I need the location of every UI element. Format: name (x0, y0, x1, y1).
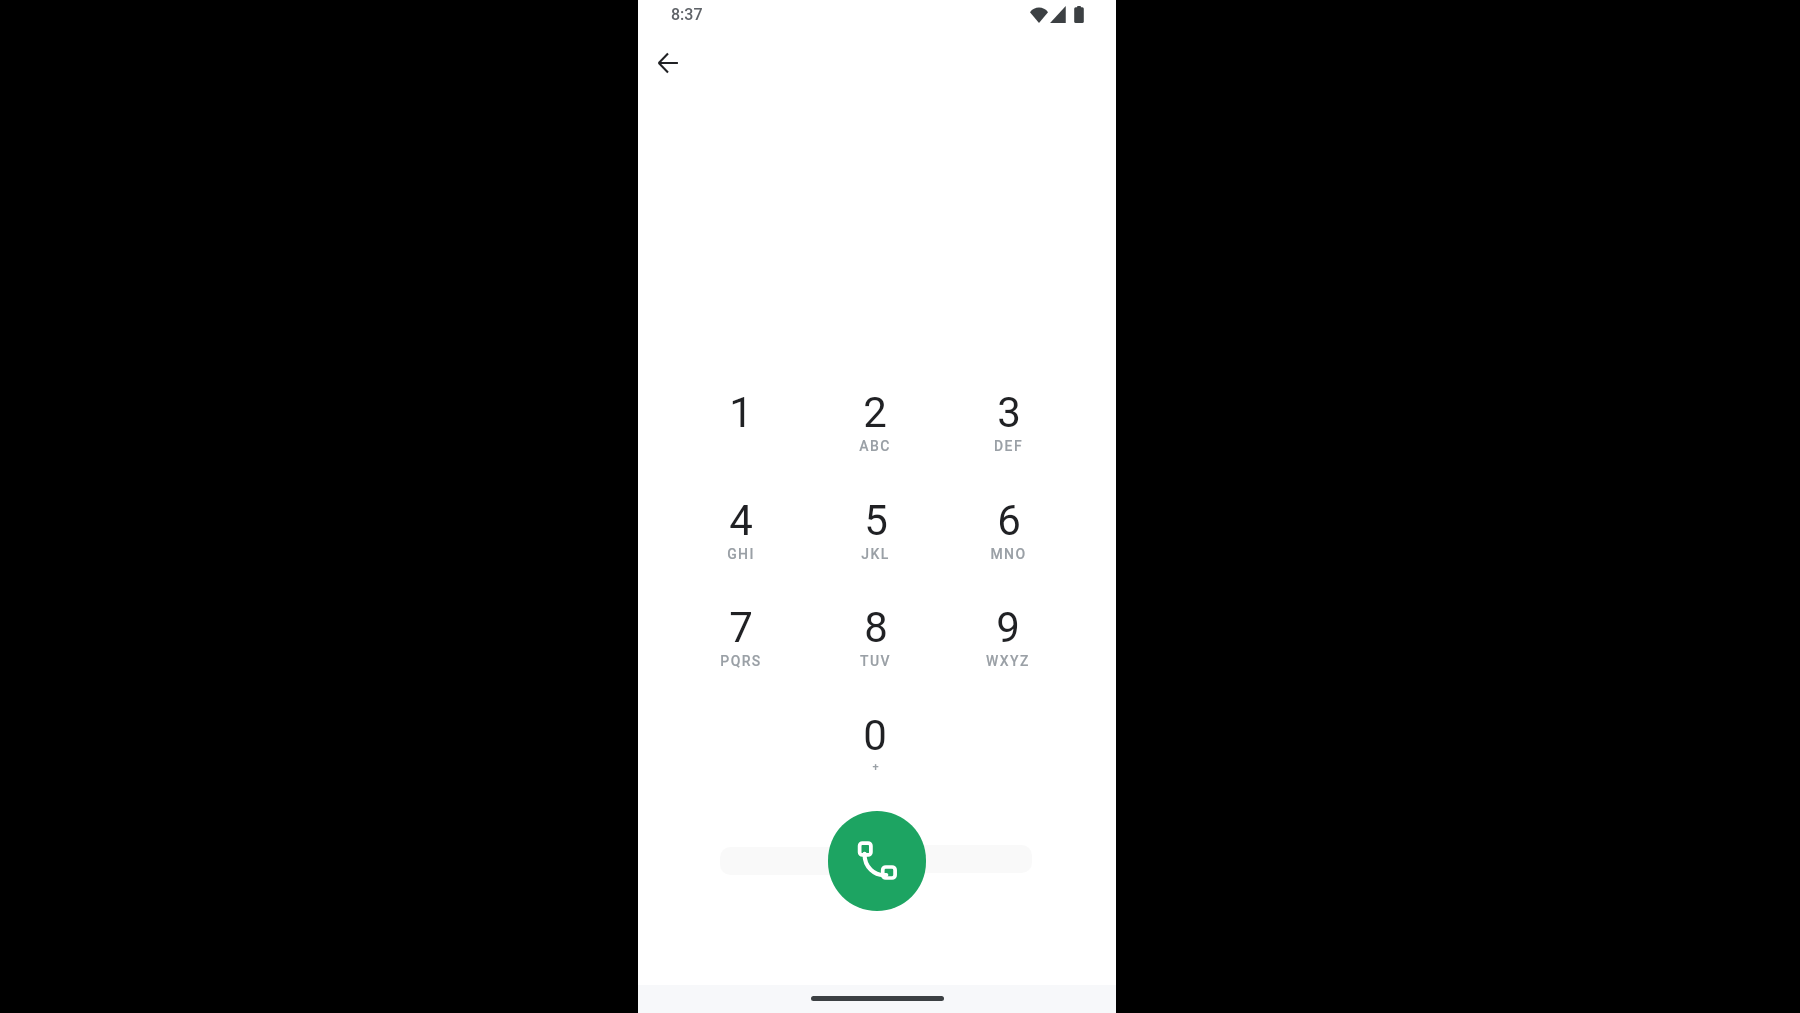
staticText: PQRS (720, 653, 762, 669)
staticText: 2 (863, 388, 887, 437)
button[interactable]: 3 (953, 388, 1063, 472)
staticText: MNO (990, 546, 1027, 562)
staticText: + (872, 761, 879, 774)
button[interactable]: 1 (686, 388, 796, 472)
staticText: 0 (863, 711, 887, 760)
button[interactable]: 9 (953, 603, 1063, 687)
button[interactable]: 2 (820, 388, 930, 472)
staticText: WXYZ (986, 653, 1030, 669)
button[interactable]: Call (828, 811, 926, 911)
button[interactable]: 5 (820, 496, 930, 580)
staticText: 7 (729, 603, 753, 652)
staticText: 1 (729, 388, 753, 437)
staticText: JKL (861, 546, 890, 562)
staticText: GHI (727, 546, 755, 562)
staticText: 5 (864, 496, 888, 545)
staticText: DEF (994, 438, 1023, 454)
staticText: 3 (997, 388, 1021, 437)
staticText: 9 (996, 603, 1020, 652)
button[interactable]: 4 (686, 496, 796, 580)
staticText: ABC (859, 438, 891, 454)
staticText: 8 (864, 603, 888, 652)
button[interactable]: 7 (686, 603, 796, 687)
staticText: TUV (860, 653, 891, 669)
button[interactable]: 6 (953, 496, 1063, 580)
staticText: 8:37 (671, 5, 703, 24)
staticText: 4 (729, 496, 753, 545)
button[interactable]: 0 (820, 711, 930, 795)
button[interactable]: 8 (820, 603, 930, 687)
staticText: 6 (997, 496, 1021, 545)
button[interactable]: Back (646, 41, 690, 85)
